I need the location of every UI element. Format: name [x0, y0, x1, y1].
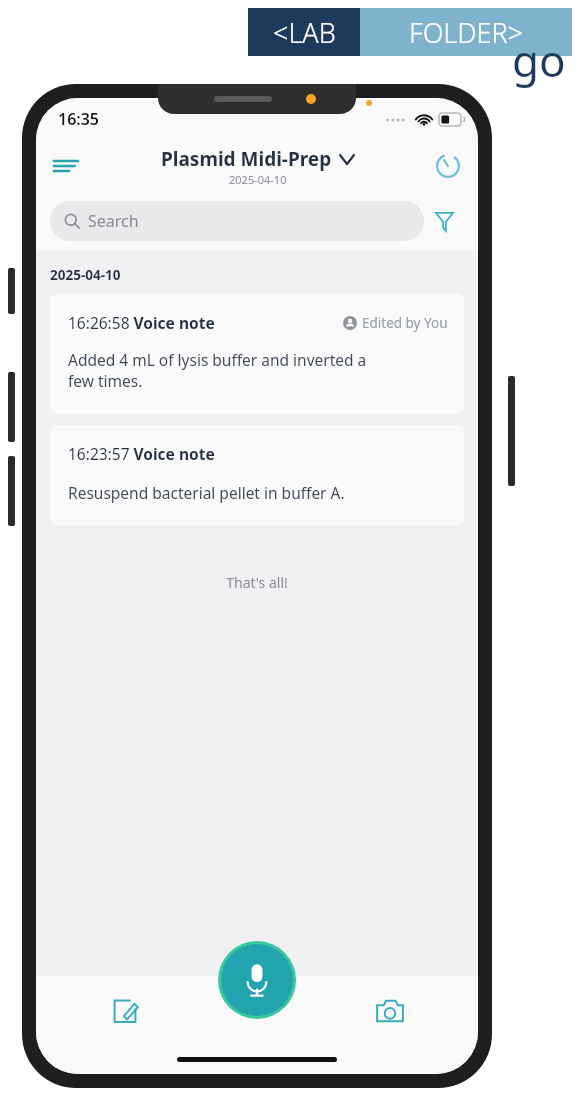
- button[interactable]: Filter: [424, 201, 464, 241]
- staticText: 2025-04-10: [50, 266, 121, 284]
- staticText: 16:23:57 Voice note: [68, 443, 215, 464]
- staticText: Plasmid Midi-Prep: [161, 146, 332, 172]
- staticText: FOLDER>: [409, 14, 523, 51]
- button[interactable]: Take photo: [301, 976, 478, 1046]
- button[interactable]: 16:23:57 Voice note: [50, 425, 464, 525]
- staticText: Search: [88, 210, 139, 232]
- button[interactable]: Plasmid Midi-Prep: [161, 146, 354, 187]
- staticText: That's all!: [36, 573, 478, 592]
- staticText: go: [512, 30, 566, 90]
- staticText: Added 4 mL of lysis buffer and inverted …: [68, 349, 367, 392]
- button[interactable]: Search: [50, 201, 424, 241]
- staticText: 2025-04-10: [229, 172, 287, 187]
- button[interactable]: Timer: [426, 144, 470, 188]
- staticText: Edited by You: [362, 314, 448, 332]
- staticText: 16:26:58 Voice note: [68, 312, 215, 333]
- staticText: <LAB: [273, 14, 336, 51]
- button[interactable]: Record voice note: [221, 944, 293, 1016]
- button[interactable]: Add text note: [36, 976, 213, 1046]
- staticText: Resuspend bacterial pellet in buffer A.: [68, 482, 345, 503]
- button[interactable]: Menu: [44, 144, 88, 188]
- button[interactable]: 16:26:58 Voice note: [50, 294, 464, 414]
- staticText: 16:35: [58, 108, 100, 130]
